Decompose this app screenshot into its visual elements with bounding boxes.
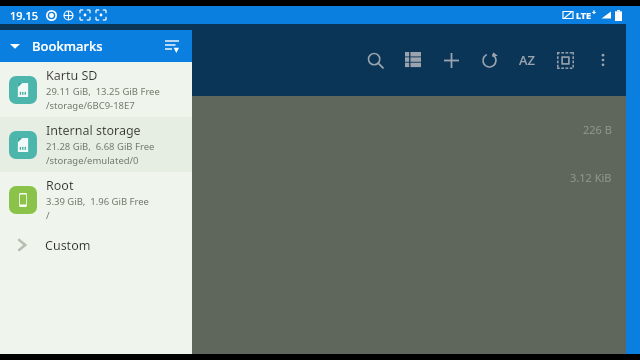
button[interactable]: Custom [0, 227, 192, 263]
staticText: 3.39 GiB, 1.96 GiB Free [46, 195, 149, 208]
button[interactable]: Search [356, 41, 394, 79]
staticText: 19.15 [10, 8, 39, 23]
button[interactable]: Sort [162, 36, 182, 56]
staticText: 21.28 GiB, 6.68 GiB Free [46, 140, 155, 153]
button[interactable]: Kartu SD [0, 62, 192, 117]
staticText: / [46, 209, 50, 222]
staticText: Root [46, 177, 74, 194]
staticText: rprefs.xml [0, 102, 63, 120]
staticText: Internal storage [46, 122, 141, 139]
button[interactable]: List view [394, 41, 432, 79]
button[interactable]: Add [432, 41, 470, 79]
staticText: Bookmarks [32, 37, 103, 55]
button[interactable]: Root [0, 172, 192, 227]
staticText: 29.11 GiB, 13.25 GiB Free [46, 85, 160, 98]
staticText: /storage/emulated/0 [46, 154, 139, 167]
button[interactable]: More options [584, 41, 622, 79]
button[interactable]: Refresh [470, 41, 508, 79]
staticText: LTE [576, 9, 592, 21]
staticText: AZ [519, 51, 535, 69]
staticText: Custom [45, 237, 91, 254]
staticText: + [592, 8, 597, 18]
button[interactable]: Select [546, 41, 584, 79]
staticText: Kartu SD [46, 67, 98, 84]
staticText: /storage/6BC9-18E7 [46, 99, 135, 112]
staticText: 3.12 KiB [570, 170, 612, 185]
button[interactable]: Sort alphabetically [508, 41, 546, 79]
staticText: 226 B [583, 122, 612, 137]
button[interactable]: Internal storage [0, 117, 192, 172]
button[interactable]: Bookmarks [0, 30, 192, 62]
